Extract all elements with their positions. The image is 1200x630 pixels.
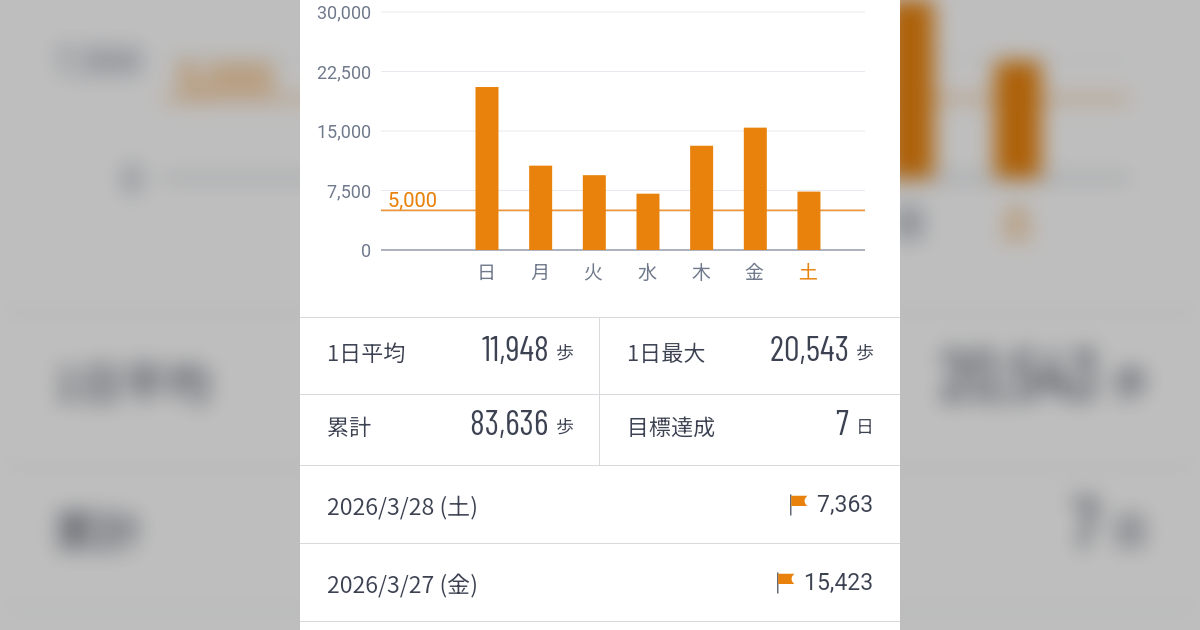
staticText: 月 <box>462 192 502 240</box>
button[interactable]: 2026/3/27 (金) <box>300 544 900 621</box>
staticText: 30,000 <box>317 2 372 23</box>
staticText: 7,500 <box>54 40 144 82</box>
staticText: 7 <box>836 400 849 442</box>
staticText: 日 <box>477 257 497 281</box>
staticText: 11,948 <box>482 326 549 368</box>
staticText: 金 <box>890 192 930 240</box>
button[interactable]: 1日最大 <box>600 318 899 394</box>
staticText: 2026/3/28 (土) <box>327 488 479 521</box>
staticText: 20,543 <box>940 330 1098 414</box>
staticText: 83,636 <box>470 400 549 442</box>
staticText: 目標達成 <box>627 409 716 441</box>
staticText: 日 <box>354 192 394 240</box>
button[interactable]: 2026/3/28 (土) <box>0 610 1200 630</box>
staticText: 日 <box>856 412 874 438</box>
staticText: 22,500 <box>317 62 372 83</box>
staticText: 土 <box>799 257 819 281</box>
staticText: 土 <box>998 192 1038 240</box>
staticText: 日 <box>1112 502 1148 554</box>
staticText: 歩 <box>512 354 548 406</box>
staticText: 1日最大 <box>627 335 706 367</box>
staticText: 歩 <box>856 338 874 364</box>
staticText: 火 <box>584 257 604 281</box>
staticText: 0 <box>122 158 144 200</box>
staticText: 水 <box>638 257 658 281</box>
staticText: 目標達成 <box>654 496 832 560</box>
staticText: 累計 <box>54 496 144 560</box>
staticText: 1日最大 <box>654 348 812 412</box>
button[interactable]: 1日最大 <box>600 314 1198 466</box>
staticText: 歩 <box>1112 354 1148 406</box>
staticText: 11,948 <box>364 330 498 414</box>
button[interactable]: 1日平均 <box>0 314 598 466</box>
staticText: 累計 <box>327 409 372 441</box>
staticText: 7,363 <box>817 491 874 518</box>
staticText: 1日平均 <box>327 335 406 367</box>
staticText: 5,000 <box>176 54 274 100</box>
button[interactable]: 累計 <box>0 468 598 608</box>
staticText: 1日平均 <box>54 348 212 412</box>
staticText: 15,423 <box>804 569 874 596</box>
staticText: 水 <box>676 192 716 240</box>
staticText: 7 <box>1072 478 1098 562</box>
staticText: 2026/3/27 (金) <box>327 566 479 599</box>
staticText: 木 <box>692 257 712 281</box>
button[interactable]: 累計 <box>300 395 599 465</box>
staticText: 火 <box>568 192 608 240</box>
other: Goal reached <box>790 493 809 517</box>
staticText: 金 <box>745 257 765 281</box>
staticText: 20,543 <box>770 326 849 368</box>
staticText: 83,636 <box>340 478 498 562</box>
button[interactable]: 1日平均 <box>300 318 599 394</box>
staticText: 7,500 <box>327 181 372 202</box>
staticText: 15,000 <box>317 121 372 142</box>
staticText: 5,000 <box>388 188 437 211</box>
staticText: 木 <box>784 192 824 240</box>
staticText: 歩 <box>512 502 548 554</box>
button[interactable]: 目標達成 <box>600 468 1198 608</box>
staticText: 歩 <box>556 338 574 364</box>
staticText: 0 <box>361 240 372 261</box>
staticText: 歩 <box>556 412 574 438</box>
button[interactable]: 目標達成 <box>600 395 899 465</box>
staticText: 月 <box>531 257 551 281</box>
button[interactable]: 2026/3/28 (土) <box>300 466 900 543</box>
other: Goal reached <box>777 571 796 595</box>
